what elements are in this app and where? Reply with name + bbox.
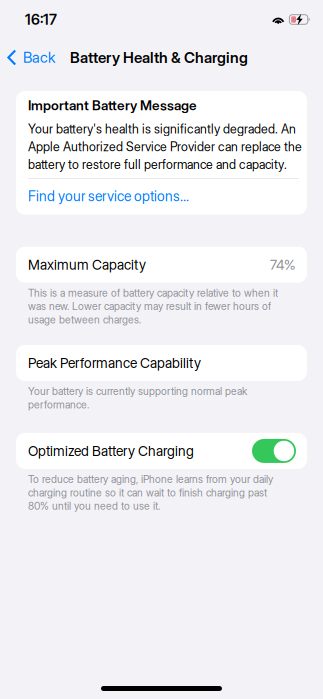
staticText: 16:17	[25, 11, 57, 28]
staticText: Important Battery Message	[28, 97, 197, 113]
staticText: To reduce battery aging, iPhone learns f…	[28, 473, 273, 512]
staticText: Your battery's health is significantly d…	[28, 121, 302, 172]
button[interactable]: Find your service options...	[28, 179, 299, 208]
button[interactable]: Maximum Capacity	[16, 247, 307, 283]
staticText: This is a measure of battery capacity re…	[28, 287, 278, 326]
staticText: Your battery is currently supporting nor…	[28, 385, 247, 411]
staticText: Find your service options...	[28, 188, 189, 205]
staticText: Back	[23, 49, 55, 66]
staticText: Maximum Capacity	[28, 256, 146, 273]
staticText: Peak Performance Capability	[28, 355, 201, 371]
button[interactable]: Peak Performance Capability	[16, 345, 307, 381]
button[interactable]: Back	[0, 42, 63, 73]
staticText: 74%	[270, 256, 296, 273]
staticText: Optimized Battery Charging	[28, 443, 194, 459]
button[interactable]: Optimized Battery Charging	[16, 433, 307, 469]
staticText: Battery Health & Charging	[70, 48, 248, 67]
